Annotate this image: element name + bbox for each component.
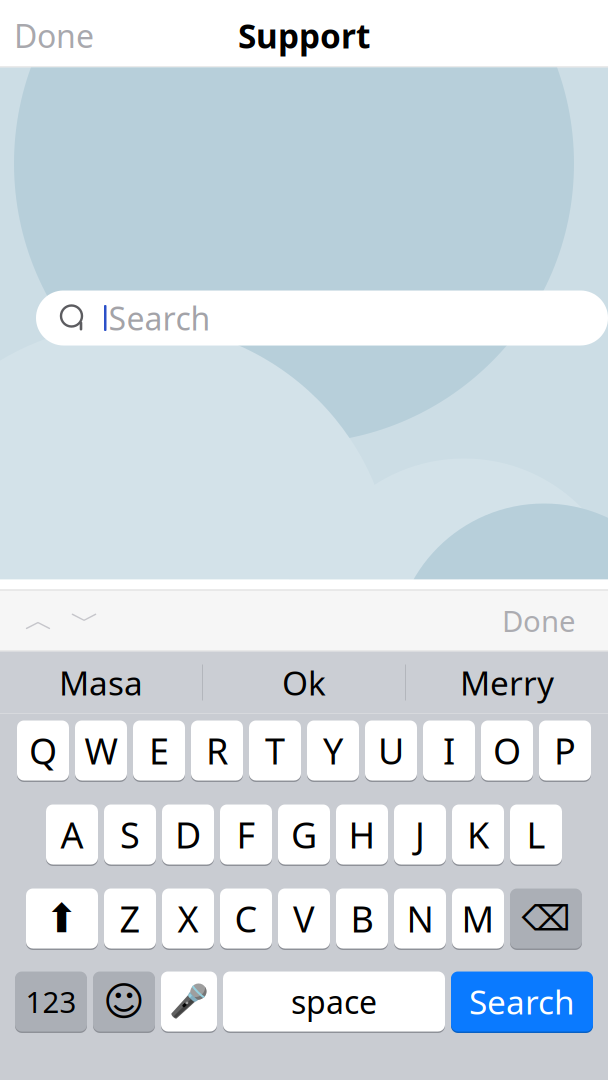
staticText: U [378,727,404,774]
button[interactable]: 123 [15,970,87,1032]
button[interactable]: D [162,803,214,865]
button[interactable]: Next field [62,598,108,642]
button[interactable]: Search [451,970,593,1032]
staticText: Search [108,297,210,339]
staticText: Search [469,979,575,1024]
button[interactable]: T [249,719,301,781]
staticText: Masa [59,660,143,705]
staticText: W [84,727,117,774]
button[interactable]: Q [17,719,69,781]
button[interactable]: Emoji [93,970,155,1032]
button[interactable]: I [423,719,475,781]
button[interactable]: Merry [406,652,608,712]
staticText: Z [119,895,140,942]
button[interactable]: B [336,887,388,949]
button[interactable]: J [394,803,446,865]
staticText: C [234,895,257,942]
staticText: Done [14,14,94,57]
staticText: E [149,727,169,774]
staticText: X [177,895,198,942]
button[interactable]: R [191,719,243,781]
button[interactable]: P [539,719,591,781]
button[interactable]: M [452,887,504,949]
staticText: ⬆ [45,896,79,941]
button[interactable]: Search [36,290,608,345]
button[interactable]: V [278,887,330,949]
staticText: Merry [460,660,554,705]
staticText: 123 [25,982,76,1021]
staticText: T [265,727,285,774]
button[interactable]: Masa [0,652,202,712]
staticText: Support [238,13,370,58]
button[interactable]: F [220,803,272,865]
button[interactable]: Dictation [161,970,217,1032]
staticText: ︿ [24,602,53,638]
staticText: R [206,727,228,774]
staticText: V [293,895,315,942]
staticText: Q [29,727,57,774]
staticText: A [60,811,83,858]
button[interactable]: H [336,803,388,865]
button[interactable]: Done [486,593,592,648]
button[interactable]: Previous field [16,598,62,642]
staticText: Ok [282,660,326,705]
staticText: N [406,895,433,942]
button[interactable]: Done [0,6,108,65]
button[interactable]: C [220,887,272,949]
button[interactable]: Ok [203,652,405,712]
staticText: I [443,727,455,774]
staticText: F [236,811,255,858]
staticText: J [415,811,425,858]
button[interactable]: Y [307,719,359,781]
button[interactable]: Delete [510,887,582,949]
staticText: Done [502,601,576,640]
button[interactable]: space [223,970,445,1032]
staticText: P [554,727,576,774]
staticText: ☺ [103,979,145,1024]
staticText: space [291,980,377,1023]
staticText: L [526,811,545,858]
button[interactable]: A [46,803,98,865]
button[interactable]: N [394,887,446,949]
button[interactable]: W [75,719,127,781]
staticText: Y [323,727,343,774]
staticText: B [350,895,373,942]
staticText: ⌫ [521,899,570,938]
button[interactable]: Shift [26,887,98,949]
button[interactable]: O [481,719,533,781]
button[interactable]: E [133,719,185,781]
staticText: D [175,811,201,858]
button[interactable]: K [452,803,504,865]
button[interactable]: L [510,803,562,865]
staticText: G [291,811,317,858]
staticText: 🎤 [169,983,209,1020]
staticText: S [120,811,140,858]
staticText: H [348,811,375,858]
staticText: K [467,811,489,858]
button[interactable]: U [365,719,417,781]
button[interactable]: Z [104,887,156,949]
button[interactable]: G [278,803,330,865]
staticText: O [493,727,521,774]
button[interactable]: X [162,887,214,949]
staticText: ﹀ [70,602,99,638]
button[interactable]: S [104,803,156,865]
staticText: M [461,895,494,942]
